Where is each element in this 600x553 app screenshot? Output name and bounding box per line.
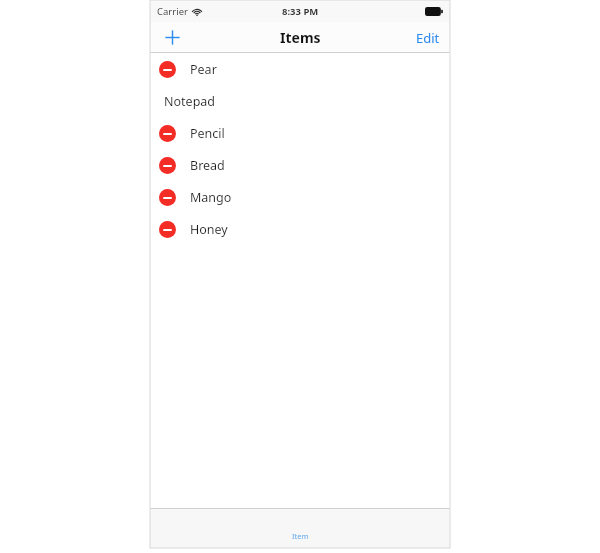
staticText: Carrier <box>157 5 188 18</box>
button[interactable]: Delete Bread <box>150 149 450 181</box>
staticText: Pear <box>190 61 217 78</box>
button[interactable]: Notepad <box>150 85 450 117</box>
button[interactable]: Item <box>270 509 330 548</box>
button[interactable]: Delete Honey <box>150 213 184 245</box>
button[interactable]: Delete Mango <box>150 181 450 213</box>
button[interactable]: Delete Pencil <box>150 117 450 149</box>
button[interactable]: Delete Mango <box>150 181 184 213</box>
staticText: Items <box>280 28 321 47</box>
button[interactable]: Delete Pencil <box>150 117 184 149</box>
staticText: Item <box>292 531 309 541</box>
staticText: Pencil <box>190 125 225 142</box>
staticText: Honey <box>190 221 228 238</box>
staticText: Edit <box>416 29 440 47</box>
button[interactable]: Delete Honey <box>150 213 450 245</box>
staticText: Bread <box>190 157 225 174</box>
button[interactable]: Delete Bread <box>150 149 184 181</box>
staticText: Mango <box>190 189 232 206</box>
button[interactable]: Delete Pear <box>150 53 450 85</box>
staticText: 8:33 PM <box>282 5 319 18</box>
staticText: Notepad <box>164 93 216 110</box>
button[interactable]: Add item <box>150 22 194 53</box>
button[interactable]: Delete Pear <box>150 53 184 85</box>
button[interactable]: Edit <box>416 22 440 53</box>
